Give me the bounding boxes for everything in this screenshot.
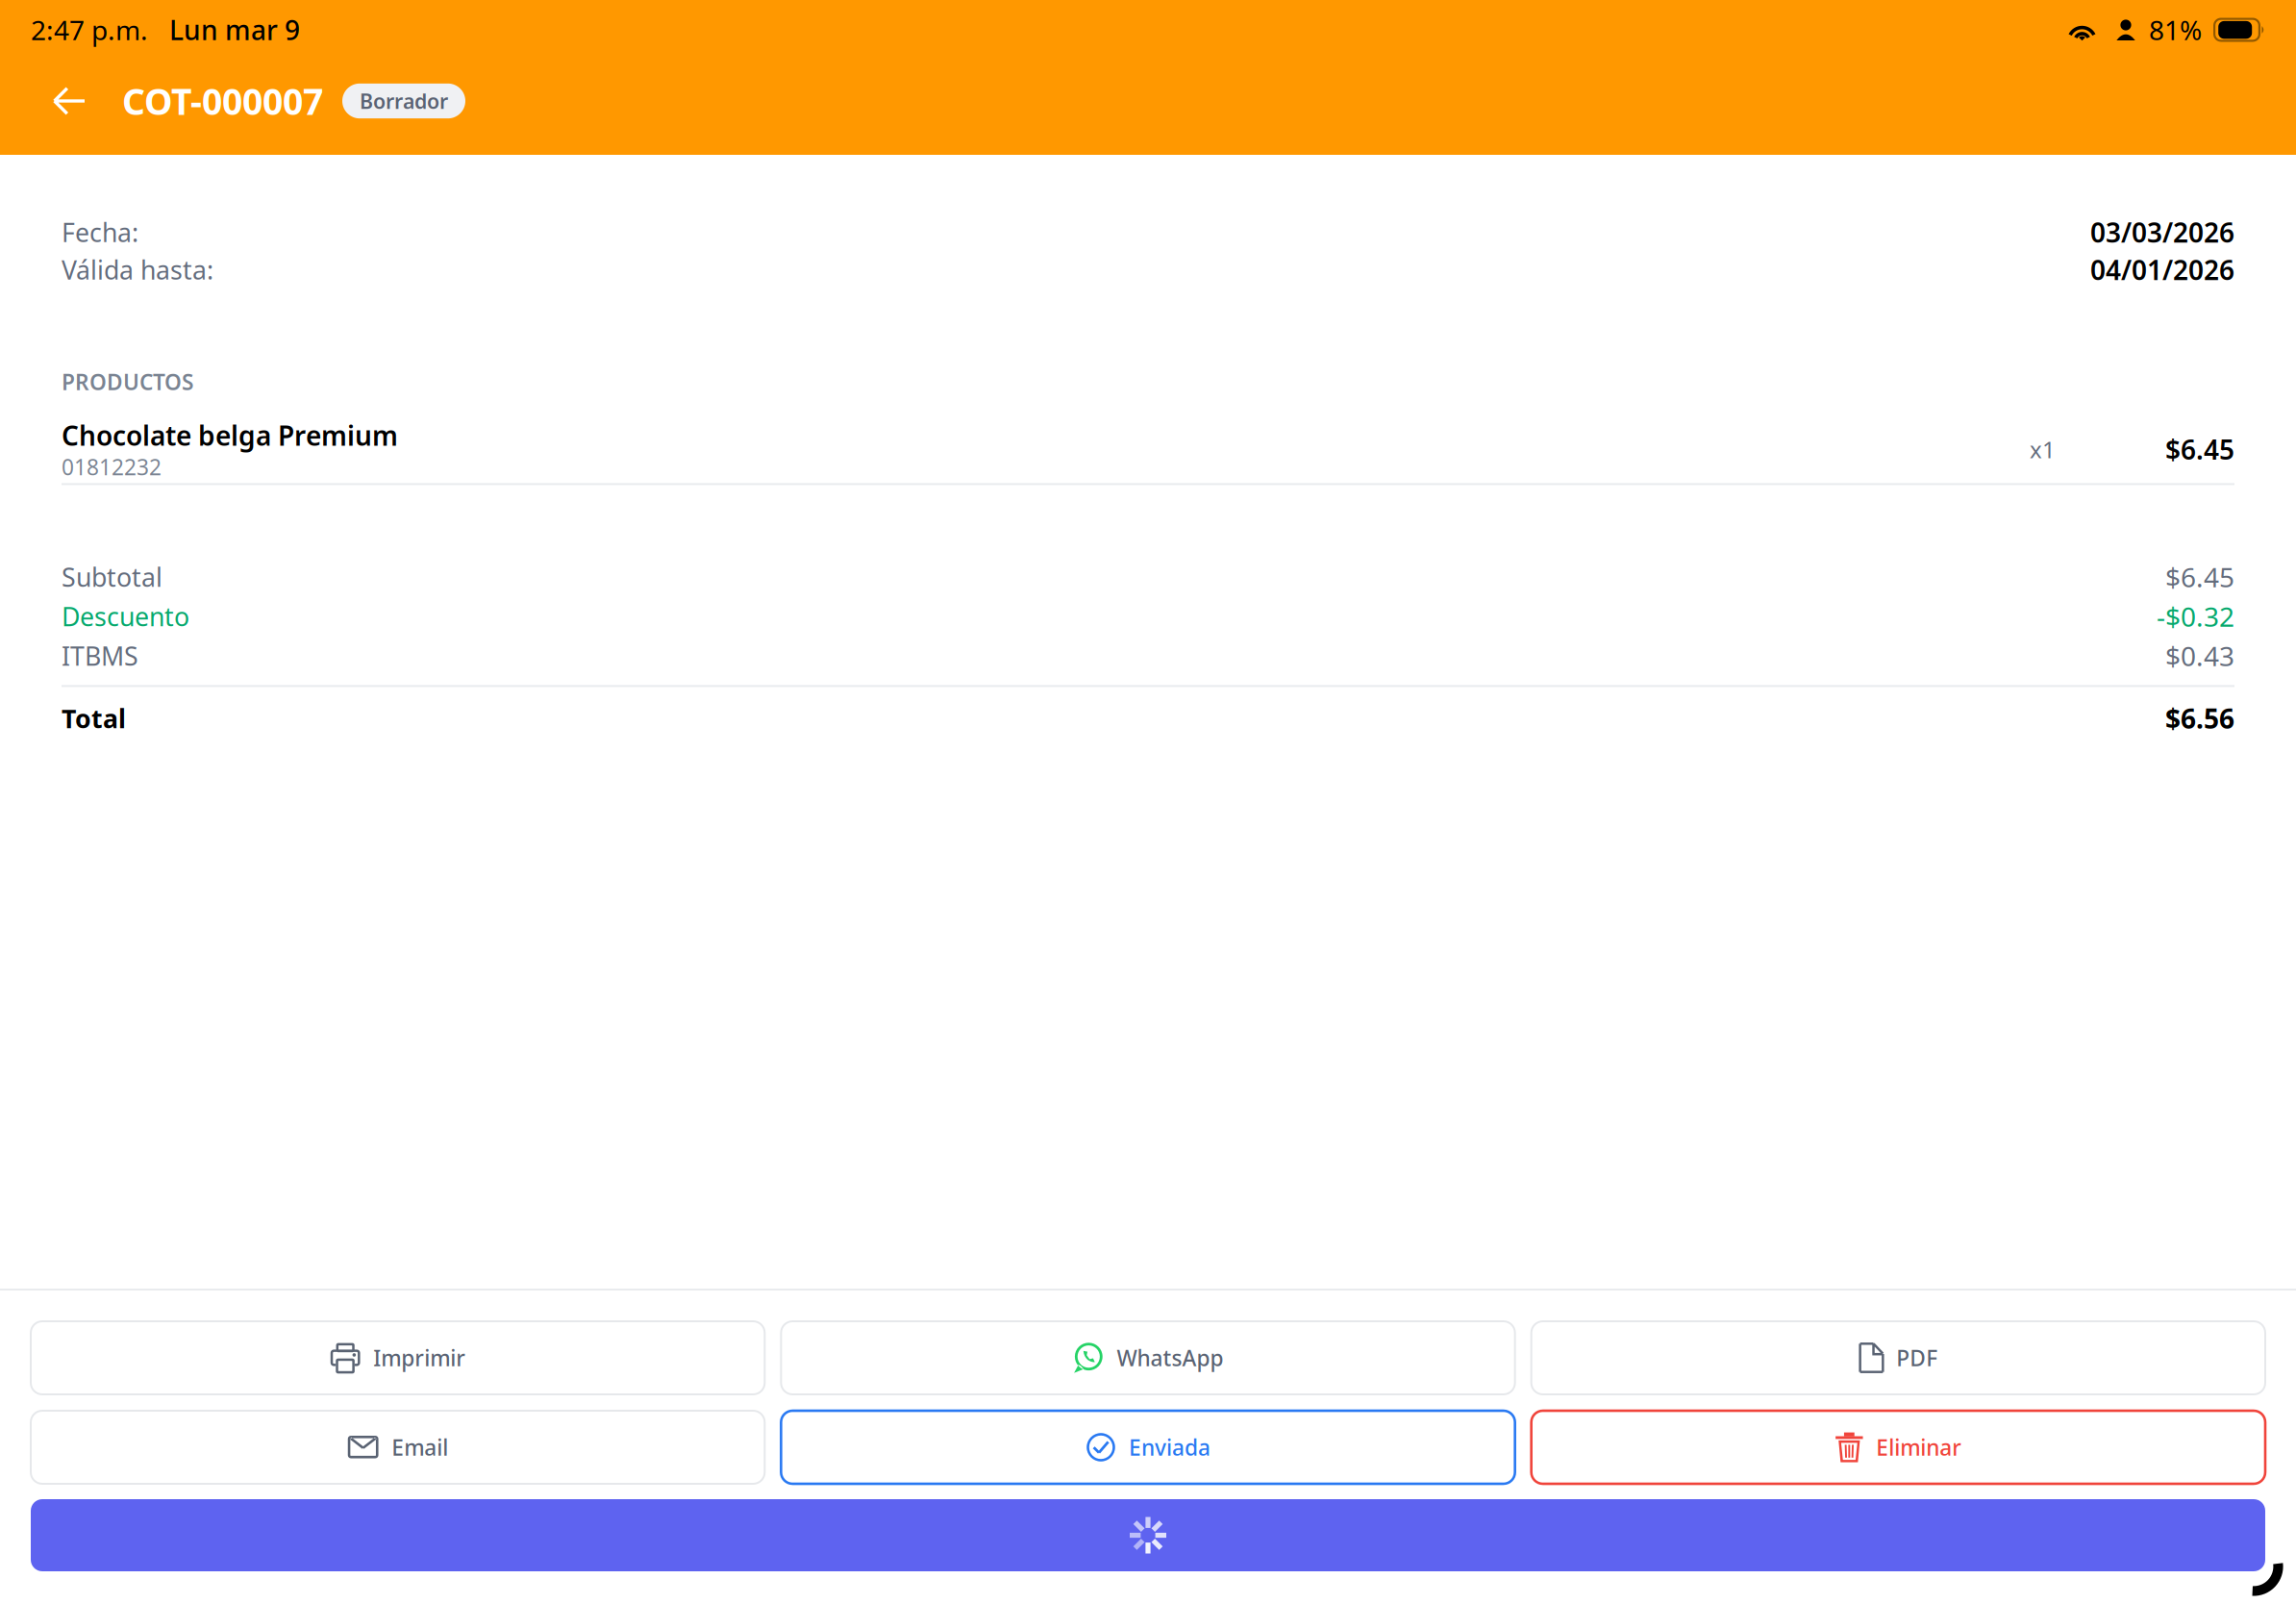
- staticText: PDF: [1896, 1343, 1938, 1372]
- staticText: $6.45: [2165, 559, 2234, 595]
- staticText: x1: [2030, 434, 2056, 465]
- staticText: Enviada: [1129, 1433, 1210, 1462]
- staticText: Chocolate belga Premium: [62, 417, 398, 453]
- staticText: 01812232: [62, 452, 162, 481]
- button[interactable]: Enviada: [781, 1411, 1515, 1484]
- staticText: COT-000007: [122, 77, 323, 125]
- staticText: Descuento: [62, 599, 189, 633]
- staticText: ITBMS: [62, 639, 138, 673]
- staticText: Imprimir: [373, 1343, 466, 1372]
- staticText: Eliminar: [1876, 1433, 1962, 1462]
- staticText: 2:47 p.m.: [31, 12, 148, 48]
- button[interactable]: Eliminar: [1531, 1411, 2265, 1484]
- staticText: 03/03/2026: [2090, 214, 2234, 250]
- staticText: Lun mar 9: [169, 12, 300, 48]
- staticText: Email: [392, 1433, 448, 1462]
- staticText: 04/01/2026: [2090, 252, 2234, 288]
- button[interactable]: Email: [31, 1411, 765, 1484]
- staticText: Válida hasta:: [62, 253, 213, 287]
- staticText: WhatsApp: [1117, 1343, 1223, 1372]
- staticText: -$0.32: [2157, 598, 2234, 634]
- staticText: $6.56: [2165, 700, 2234, 736]
- staticText: 81%: [2149, 12, 2202, 48]
- staticText: PRODUCTOS: [62, 367, 193, 396]
- button[interactable]: Guardando: [31, 1499, 2265, 1571]
- staticText: $0.43: [2165, 638, 2234, 674]
- staticText: Fecha:: [62, 215, 138, 249]
- staticText: Borrador: [360, 87, 448, 115]
- button[interactable]: Imprimir: [31, 1321, 765, 1394]
- button[interactable]: WhatsApp: [781, 1321, 1515, 1394]
- staticText: $6.45: [2165, 431, 2234, 467]
- staticText: Subtotal: [62, 560, 162, 594]
- button[interactable]: PDF: [1531, 1321, 2265, 1394]
- button[interactable]: Back: [45, 72, 93, 130]
- staticText: Total: [62, 701, 126, 735]
